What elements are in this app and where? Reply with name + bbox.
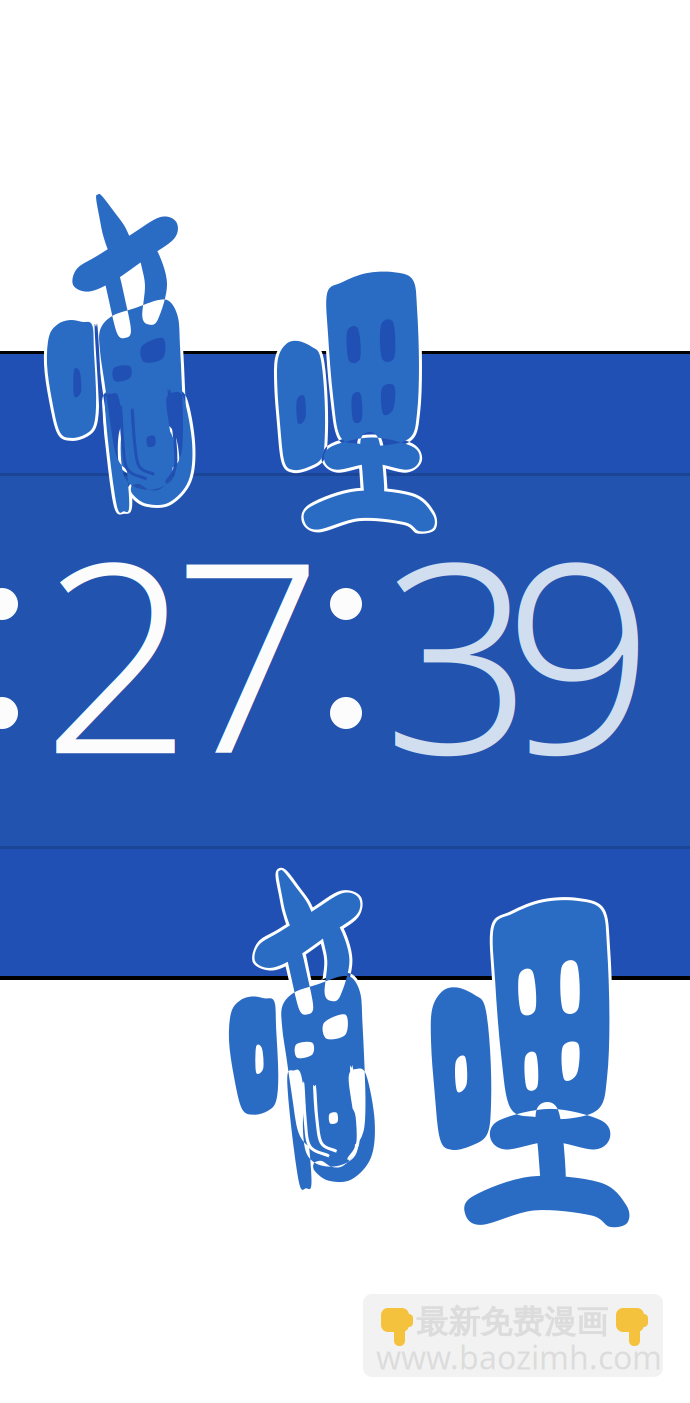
staticText: 最新免费漫画 (416, 1302, 608, 1342)
staticText: 9 (504, 477, 654, 826)
staticText: 3 (383, 477, 533, 826)
staticText: 7 (173, 477, 323, 826)
staticText: www.baozimh.com (376, 1336, 662, 1378)
staticText: 2 (42, 477, 192, 826)
